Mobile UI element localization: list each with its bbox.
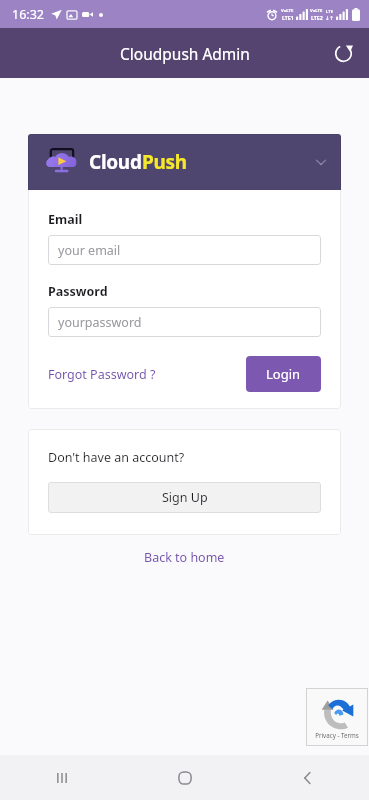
staticText: LTE2 [311, 14, 323, 21]
button[interactable]: Back [246, 755, 369, 800]
button[interactable]: your email [48, 235, 321, 265]
button[interactable]: yourpassword [48, 307, 321, 337]
button[interactable]: Forgot Password ? [48, 362, 156, 387]
staticText: LTE1 [282, 14, 294, 21]
button[interactable]: Sign Up [48, 482, 321, 513]
staticText: Password [48, 283, 108, 300]
button[interactable]: Cloud [28, 134, 341, 190]
button[interactable]: Back to home [138, 545, 231, 570]
staticText: ↓↑ [325, 15, 334, 21]
button[interactable]: Refresh [325, 35, 361, 71]
staticText: Don't have an account? [48, 449, 185, 466]
staticText: Privacy - Terms [315, 731, 359, 739]
staticText: your email [58, 242, 121, 259]
button[interactable]: Home [123, 755, 246, 800]
staticText: Login [266, 365, 301, 383]
staticText: Sign Up [162, 489, 208, 506]
staticText: yourpassword [58, 314, 142, 331]
staticText: VoLTE [310, 8, 323, 14]
button[interactable]: reCAPTCHA Privacy Terms [306, 688, 368, 746]
staticText: Push [142, 149, 187, 175]
staticText: 16:32 [12, 6, 44, 23]
staticText: Cloudpush Admin [120, 43, 250, 64]
staticText: Email [48, 211, 83, 228]
staticText: LTE [326, 9, 334, 15]
button[interactable]: Login [246, 356, 321, 392]
button[interactable]: Recent apps [0, 755, 123, 800]
staticText: VoLTE [281, 8, 294, 14]
staticText: Cloud [89, 149, 142, 175]
